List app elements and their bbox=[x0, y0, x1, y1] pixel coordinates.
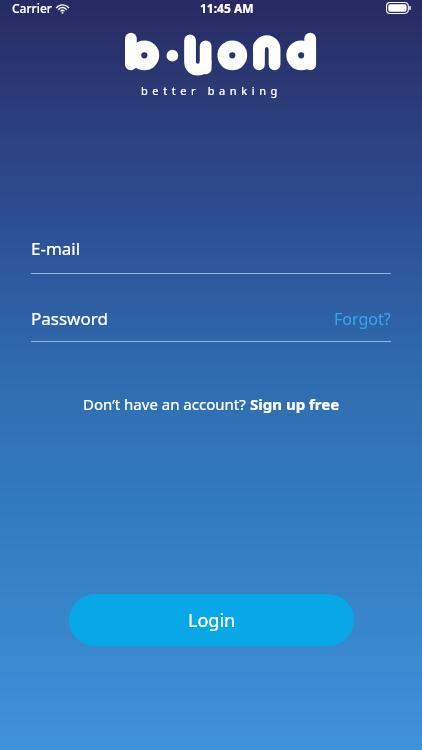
staticText: Password bbox=[31, 307, 108, 330]
button[interactable]: Forgot? bbox=[334, 308, 391, 330]
staticText: Don’t have an account? bbox=[83, 394, 250, 414]
staticText: Carrier bbox=[12, 0, 52, 16]
staticText: 11:45 AM bbox=[200, 0, 254, 16]
button[interactable]: Password bbox=[31, 307, 391, 330]
staticText: Login bbox=[188, 608, 236, 633]
staticText: Forgot? bbox=[334, 308, 391, 330]
staticText: better banking bbox=[141, 83, 282, 98]
button[interactable]: E-mail bbox=[0, 237, 422, 274]
other: Battery bbox=[386, 2, 412, 14]
staticText: E-mail bbox=[31, 237, 81, 260]
staticText: Sign up free bbox=[250, 394, 340, 414]
button[interactable]: Login bbox=[69, 594, 354, 646]
button[interactable]: Don’t have an account? bbox=[71, 388, 352, 420]
